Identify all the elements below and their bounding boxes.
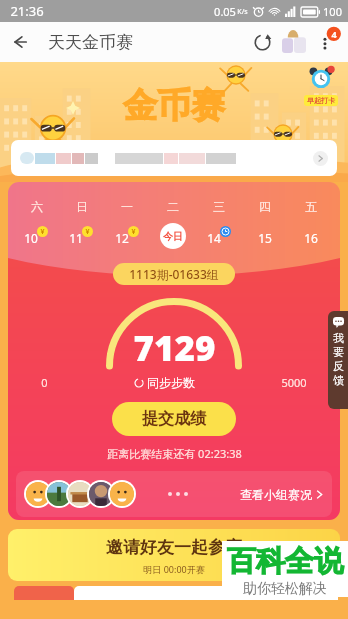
button[interactable]: 今日 [150,223,196,249]
staticText: ¥ [40,227,45,237]
staticText: 21:36 [10,2,44,20]
staticText: 0 [41,375,48,390]
staticText: 距离比赛结束还有 02:23:38 [107,446,242,461]
staticText: ¥ [131,227,136,237]
staticText: 查看小组赛况 [240,487,312,502]
staticText: 16 [304,230,318,246]
staticText: 今日 [163,230,183,243]
staticText: 明日 00:00开赛 [143,563,205,575]
staticText: 100 [323,4,342,19]
staticText: 4 [331,28,337,40]
button[interactable]: 同步步数 [134,375,195,390]
button[interactable]: Back [0,23,38,61]
staticText: 邀请好友一起参赛 [106,537,242,558]
button[interactable]: Logo [278,26,310,58]
staticText: 六 [31,199,43,214]
staticText: 助你轻松解决 [243,580,327,597]
staticText: 0.05 [214,4,236,19]
button[interactable]: Refresh [246,26,278,58]
button[interactable]: 10 [14,223,59,249]
button[interactable]: 提交成绩 [112,402,236,436]
staticText: 四 [259,199,271,214]
staticText: ¥ [85,227,90,237]
staticText: 提交成绩 [142,409,206,429]
staticText: 14 [207,230,221,246]
staticText: 10 [24,230,38,246]
staticText: 日 [76,199,88,214]
staticText: 馈 [333,373,344,387]
button[interactable]: 16 [288,223,334,249]
staticText: K/s [237,7,248,17]
button[interactable]: 我 [328,311,348,409]
staticText: 7129 [133,324,216,372]
staticText: 天天金币赛 [48,32,133,53]
staticText: 11 [69,230,83,246]
button[interactable]: 12 [104,223,150,249]
button[interactable]: 查看小组赛况 [16,471,332,517]
staticText: 12 [115,230,129,246]
staticText: 1113期-01633组 [129,266,219,282]
button[interactable]: 15 [242,223,288,249]
staticText: 5000 [281,375,307,390]
button[interactable]: More options [310,25,344,59]
staticText: 要 [333,345,344,359]
staticText: 百科全说 [227,543,343,580]
staticText: 15 [258,230,272,246]
button[interactable]: 11 [59,223,104,249]
staticText: 我 [333,331,344,345]
staticText: 同步步数 [147,375,195,390]
button[interactable]: 早起打卡 [300,66,342,106]
button[interactable]: 14 [196,223,242,249]
staticText: 三 [213,199,225,214]
button[interactable]: 邀请好友一起参赛 [8,529,340,581]
button[interactable] [11,140,337,176]
staticText: 早起打卡 [307,96,335,105]
staticText: 一 [121,199,133,214]
staticText: 五 [305,199,317,214]
staticText: 反 [333,359,344,373]
staticText: 二 [167,199,179,214]
staticText: 金币赛 [123,84,225,127]
